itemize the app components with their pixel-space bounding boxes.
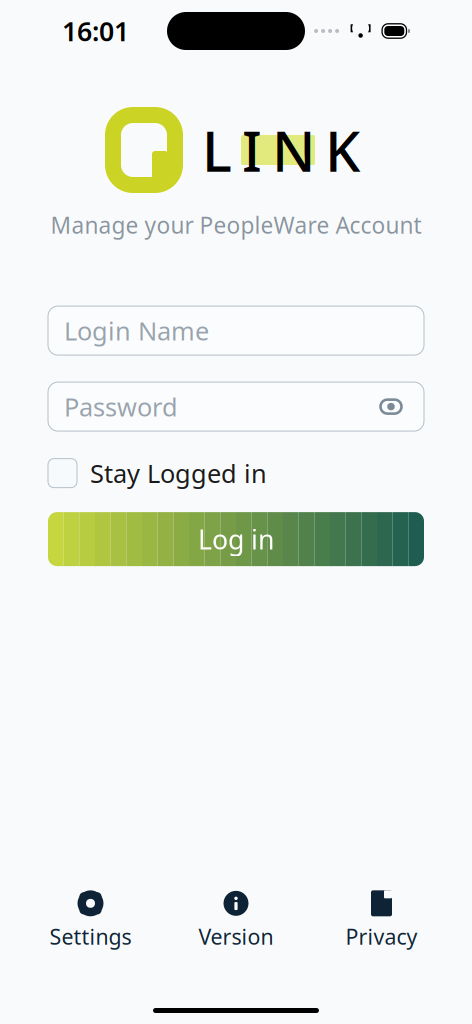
button[interactable]: Log in [48, 512, 424, 566]
staticText: 16:01 [62, 13, 129, 49]
staticText: I [242, 113, 262, 187]
button[interactable]: Stay Logged in [48, 456, 424, 490]
button[interactable]: Show password [374, 390, 408, 424]
staticText: L [202, 113, 232, 187]
staticText: Stay Logged in [90, 456, 267, 490]
staticText: Login Name [64, 314, 209, 347]
staticText: Version [198, 922, 273, 951]
button[interactable]: Settings [35, 891, 145, 949]
staticText: Log in [198, 521, 274, 557]
button[interactable]: Version [181, 891, 291, 949]
staticText: Manage your PeopleWare Account [50, 210, 421, 240]
staticText: K [325, 113, 360, 187]
staticText: Privacy [345, 922, 417, 951]
button[interactable]: Privacy [326, 891, 436, 949]
staticText: Password [64, 390, 178, 423]
staticText: N [272, 113, 315, 187]
staticText: Settings [49, 922, 131, 951]
